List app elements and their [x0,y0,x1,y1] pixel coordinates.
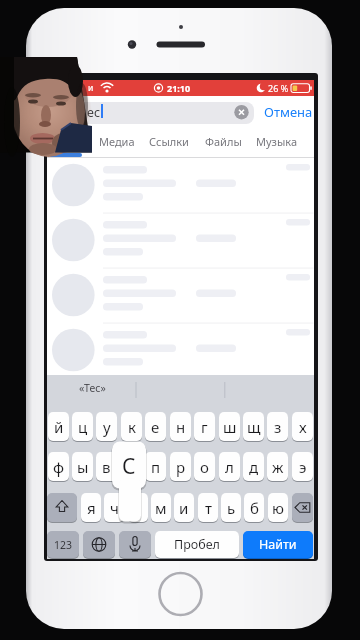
staticText: в [102,457,111,477]
button[interactable]: г [194,412,215,441]
staticText: Найти [259,536,297,553]
button[interactable]: Ссылки [109,129,229,153]
staticText: т [205,498,212,518]
button[interactable]: Медиа [57,129,177,153]
button[interactable]: ж [267,452,288,481]
button[interactable]: к [121,412,142,441]
button[interactable]: а [121,452,142,481]
button[interactable]: н [170,412,191,441]
staticText: ы [77,457,89,477]
staticText: к [128,417,136,437]
button[interactable]: Музыка [217,129,337,153]
staticText: н [176,417,186,437]
staticText: ес [87,104,101,121]
staticText: Музыка [256,134,298,149]
staticText: я [87,498,96,518]
button[interactable]: ц [72,412,93,441]
button[interactable]: ю [268,493,288,522]
button[interactable]: й [48,412,69,441]
staticText: е [151,417,160,437]
staticText: у [103,417,111,437]
staticText: ж [272,457,284,477]
button[interactable]: я [81,493,101,522]
button[interactable]: 123 [47,531,79,558]
staticText: ь [227,498,236,518]
staticText: а [127,457,136,477]
staticText: и [179,498,189,518]
button[interactable]: ч [104,493,124,522]
button[interactable] [47,323,314,378]
staticText: Файлы [205,134,242,149]
button[interactable]: ф [48,452,69,481]
button[interactable]: Отмена [228,100,348,124]
staticText: с [134,498,142,518]
staticText: ю [272,498,284,518]
staticText: 26 % [268,82,289,94]
staticText: ч [110,498,119,518]
staticText: 21:10 [167,82,191,94]
button[interactable]: у [96,412,117,441]
button[interactable]: Файлы [163,129,283,153]
button[interactable]: п [145,452,166,481]
staticText: п [151,457,161,477]
button[interactable]: о [194,452,215,481]
button[interactable]: з [267,412,288,441]
staticText: э [299,457,307,477]
button[interactable]: ы [72,452,93,481]
staticText: 123 [54,538,73,552]
staticText: щ [247,417,261,437]
staticText: Медиа [99,134,135,149]
button[interactable]: д [243,452,264,481]
button[interactable]: Пробел [155,531,239,558]
staticText: Пробел [174,536,220,553]
staticText: о [200,457,209,477]
staticText: л [225,457,234,477]
button[interactable] [47,213,314,268]
staticText: р [176,457,186,477]
button[interactable]: в [96,452,117,481]
button[interactable] [47,493,77,522]
button[interactable] [47,158,314,213]
button[interactable]: щ [243,412,264,441]
button[interactable]: и [174,493,194,522]
button[interactable]: ш [219,412,240,441]
staticText: «Тес» [79,381,106,395]
button[interactable] [83,531,115,558]
staticText: д [249,457,259,477]
staticText: ф [53,457,65,477]
staticText: С [122,452,136,476]
button[interactable]: Найти [243,531,313,558]
staticText: з [274,417,282,437]
staticText: ш [223,417,237,437]
button[interactable]: х [292,412,313,441]
button[interactable]: е [145,412,166,441]
staticText: Ссылки [149,134,189,149]
button[interactable]: ь [221,493,241,522]
button[interactable] [47,268,314,323]
staticText: и [88,82,94,94]
staticText: м [155,498,167,518]
button[interactable]: м [151,493,171,522]
staticText: х [299,417,307,437]
button[interactable] [159,573,202,615]
button[interactable]: э [292,452,313,481]
staticText: г [201,417,208,437]
button[interactable] [292,493,313,522]
staticText: ц [78,417,88,437]
button[interactable]: л [219,452,240,481]
button[interactable]: с [128,493,148,522]
button[interactable]: б [244,493,264,522]
button[interactable] [54,102,254,124]
button[interactable] [119,531,151,558]
staticText: й [54,417,64,437]
button[interactable]: т [198,493,218,522]
button[interactable]: р [170,452,191,481]
staticText: б [250,498,259,518]
staticText: Отмена [264,103,313,121]
